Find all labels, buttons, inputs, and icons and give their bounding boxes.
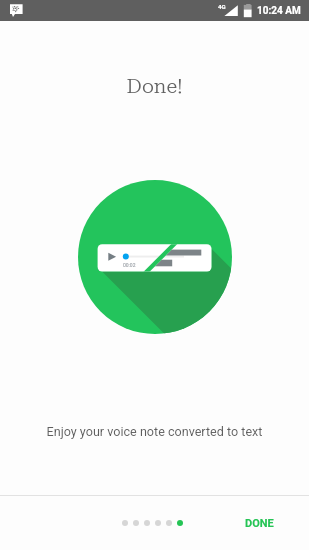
staticText: Enjoy your voice note converted to text <box>0 424 309 439</box>
staticText: 4G <box>218 3 226 10</box>
button[interactable]: Page 4 <box>155 520 161 526</box>
staticText: Done! <box>0 74 309 97</box>
button[interactable]: Page 3 <box>144 520 150 526</box>
button[interactable]: Page 1 <box>122 520 128 526</box>
button[interactable]: Page 6 <box>177 520 183 526</box>
staticText: DONE <box>245 517 274 530</box>
staticText: 00:02 <box>123 262 136 268</box>
button[interactable]: Page 2 <box>133 520 139 526</box>
button[interactable]: DONE <box>237 507 282 540</box>
button[interactable]: Page 5 <box>166 520 172 526</box>
staticText: 10:24 AM <box>257 5 301 17</box>
